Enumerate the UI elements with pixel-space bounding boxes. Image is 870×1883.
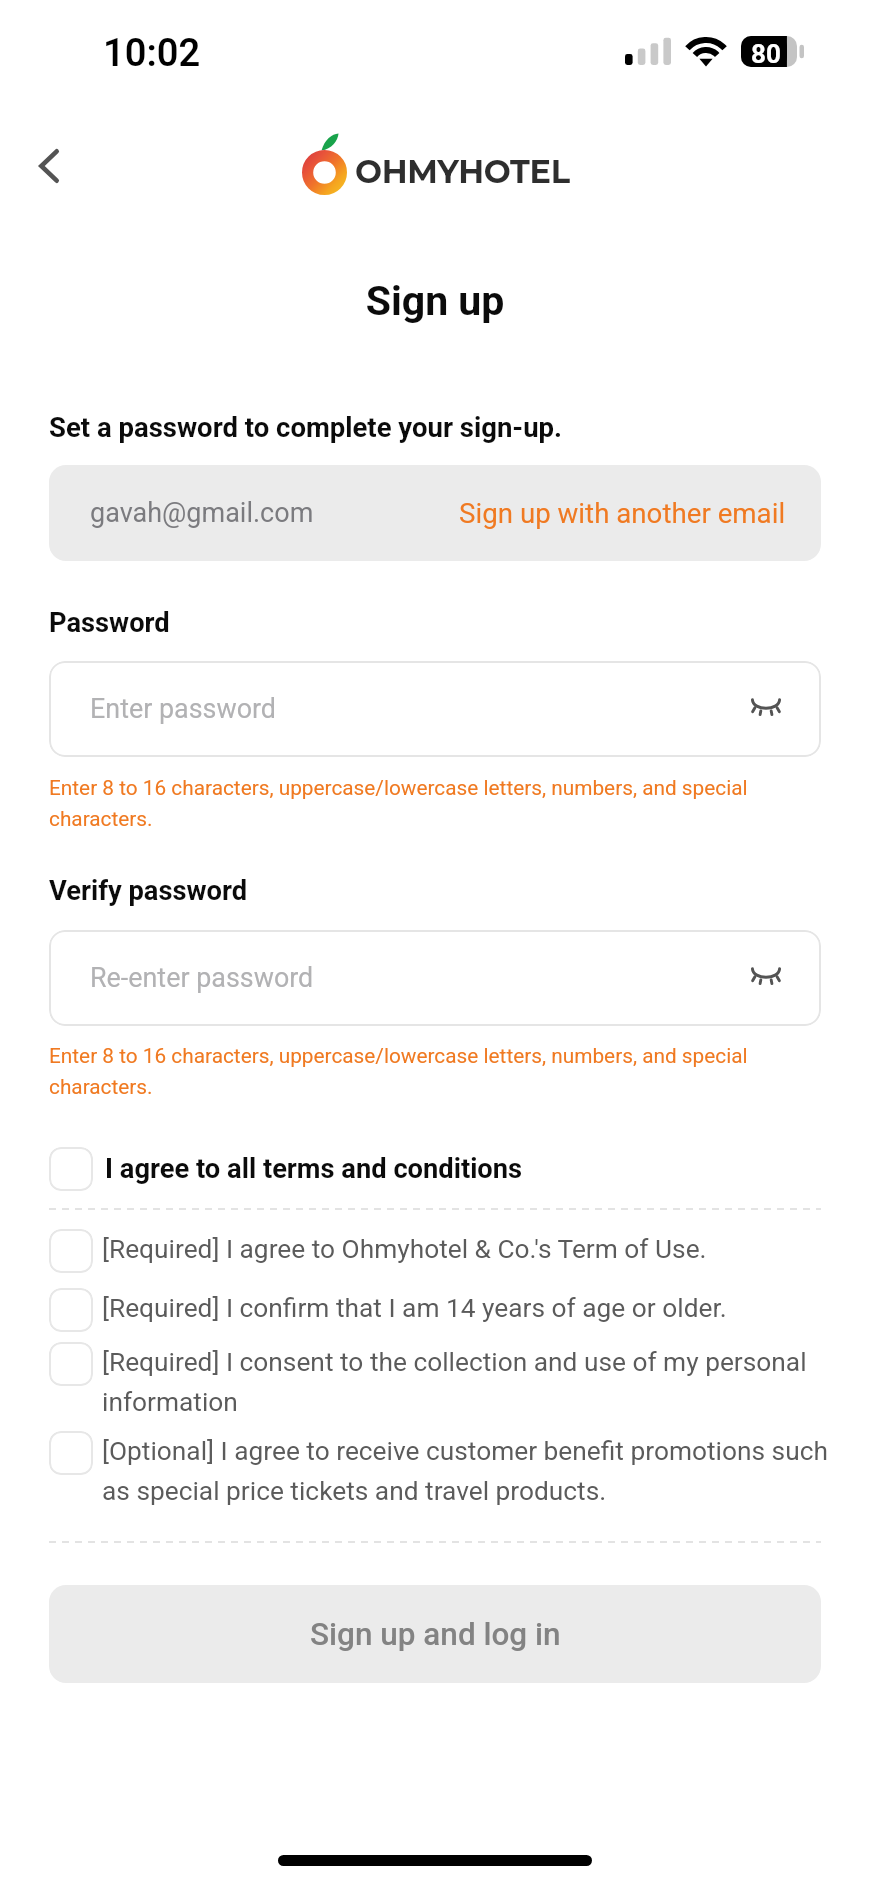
button[interactable]: Checkbox [49,1229,831,1273]
button[interactable]: Sign up and log in [49,1585,821,1683]
staticText: Enter password [90,693,277,725]
staticText: Set a password to complete your sign-up. [49,411,563,443]
button[interactable]: Show password [742,954,790,1002]
staticText: [Required] I confirm that I am 14 years … [102,1293,831,1324]
staticText: I agree to all terms and conditions [105,1153,523,1185]
button[interactable]: Enter password [49,661,821,757]
button[interactable]: Checkbox [49,1431,93,1475]
staticText: Enter 8 to 16 characters, uppercase/lowe… [49,776,759,831]
staticText: Password [49,607,170,639]
button[interactable]: Checkbox [49,1288,831,1332]
button[interactable]: Checkbox [49,1229,93,1273]
button[interactable]: Re-enter password [49,930,821,1026]
staticText: OHMYHOTEL [355,152,570,191]
staticText: Enter 8 to 16 characters, uppercase/lowe… [49,1044,759,1099]
staticText: Re-enter password [90,962,314,994]
staticText: gavah@gmail.com [90,497,314,529]
button[interactable]: Back [21,138,77,194]
button[interactable]: Checkbox [49,1431,831,1501]
staticText: 80 [751,39,781,69]
staticText: Verify password [49,875,248,907]
staticText: [Optional] I agree to receive customer b… [102,1436,831,1506]
button[interactable]: Show password [742,685,790,733]
staticText: [Required] I consent to the collection a… [102,1347,831,1417]
button[interactable]: Checkbox [49,1145,821,1193]
button[interactable]: Checkbox [49,1147,93,1191]
button[interactable]: gavah@gmail.com [49,465,821,561]
staticText: [Required] I agree to Ohmyhotel & Co.'s … [102,1234,831,1265]
button[interactable]: Checkbox [49,1342,93,1386]
staticText: Sign up and log in [310,1616,561,1653]
button[interactable]: Sign up with another email [459,465,786,561]
button[interactable]: Checkbox [49,1342,831,1412]
staticText: Sign up [0,277,870,325]
staticText: Sign up with another email [459,497,786,529]
button[interactable]: Checkbox [49,1288,93,1332]
staticText: 10:02 [103,31,201,76]
